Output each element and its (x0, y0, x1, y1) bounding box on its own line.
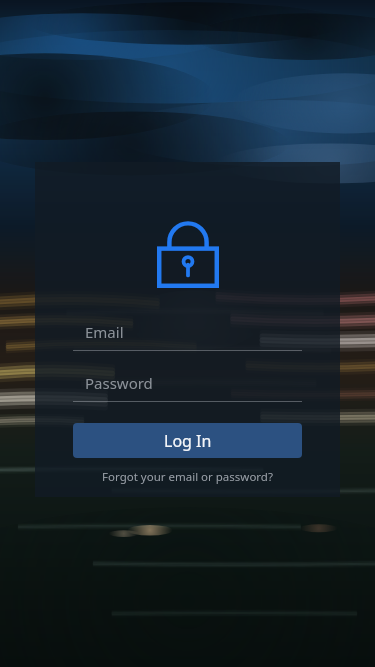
staticText: Password (85, 373, 153, 393)
button[interactable]: Log In (73, 423, 302, 458)
other: Secure login (157, 210, 219, 288)
button[interactable]: Password (73, 373, 302, 402)
button[interactable]: Email (73, 322, 302, 351)
staticText: Forgot your email or password? (102, 469, 273, 485)
button[interactable]: Forgot your email or password? (73, 469, 302, 485)
staticText: Log In (164, 430, 212, 452)
staticText: Email (85, 322, 124, 342)
